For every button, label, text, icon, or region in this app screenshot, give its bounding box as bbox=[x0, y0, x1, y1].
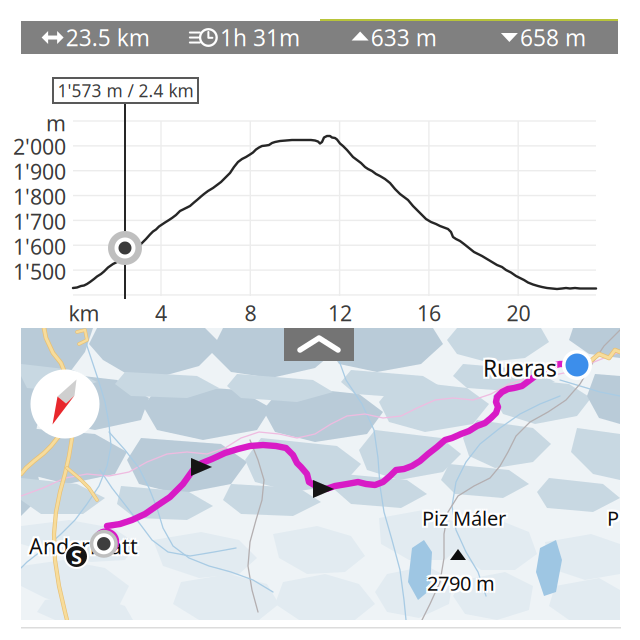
staticText: Andermatt bbox=[31, 530, 140, 558]
staticText: 1'800 bbox=[13, 182, 66, 211]
staticText: Andermatt bbox=[31, 534, 140, 562]
staticText: 2790 m bbox=[425, 568, 493, 594]
staticText: P bbox=[607, 503, 619, 529]
staticText: Piz Máler bbox=[420, 505, 504, 531]
staticText: 16 bbox=[417, 299, 441, 327]
staticText: Piz Máler bbox=[422, 505, 506, 531]
staticText: 2'000 bbox=[13, 132, 66, 161]
staticText: 2790 m bbox=[429, 568, 497, 594]
staticText: Piz Máler bbox=[424, 507, 508, 533]
staticText: Andermatt bbox=[27, 530, 136, 558]
staticText: 2790 m bbox=[429, 572, 497, 598]
staticText: Andermatt bbox=[29, 534, 138, 562]
button[interactable]: 658 m bbox=[469, 21, 618, 54]
staticText: Rueras bbox=[485, 355, 559, 385]
staticText: Andermatt bbox=[29, 532, 138, 560]
staticText: 2790 m bbox=[425, 572, 493, 598]
staticText: P bbox=[605, 503, 617, 529]
staticText: Piz Máler bbox=[420, 503, 504, 529]
staticText: 1'900 bbox=[13, 157, 66, 186]
staticText: S bbox=[71, 543, 82, 570]
button[interactable]: 1h 31m bbox=[170, 21, 319, 54]
button[interactable]: Compass bbox=[30, 369, 99, 438]
staticText: P bbox=[605, 507, 617, 533]
staticText: Rueras bbox=[481, 351, 555, 381]
staticText: Andermatt bbox=[27, 534, 136, 562]
staticText: Piz Máler bbox=[422, 507, 506, 533]
staticText: 2790 m bbox=[427, 570, 495, 596]
staticText: Andermatt bbox=[29, 530, 138, 558]
staticText: 2790 m bbox=[427, 572, 495, 598]
staticText: 20 bbox=[506, 299, 530, 327]
button[interactable]: Collapse map bbox=[284, 328, 354, 361]
staticText: m bbox=[46, 109, 66, 137]
staticText: Rueras bbox=[483, 353, 557, 383]
staticText: P bbox=[609, 507, 621, 533]
staticText: 633 m bbox=[371, 22, 437, 52]
staticText: Piz Máler bbox=[422, 503, 506, 529]
staticText: 658 m bbox=[520, 22, 586, 52]
staticText: 23.5 km bbox=[66, 22, 150, 52]
staticText: Rueras bbox=[485, 353, 559, 383]
staticText: Piz Máler bbox=[424, 505, 508, 531]
button[interactable]: 23.5 km bbox=[21, 21, 170, 54]
staticText: Rueras bbox=[481, 353, 555, 383]
staticText: Andermatt bbox=[31, 532, 140, 560]
staticText: 12 bbox=[328, 299, 352, 327]
staticText: 4 bbox=[155, 299, 167, 327]
staticText: Rueras bbox=[481, 355, 555, 385]
staticText: 2790 m bbox=[427, 568, 495, 594]
staticText: 1h 31m bbox=[220, 22, 300, 52]
staticText: Rueras bbox=[483, 351, 557, 381]
staticText: P bbox=[605, 505, 617, 531]
staticText: 1'500 bbox=[13, 257, 66, 286]
staticText: 2790 m bbox=[429, 570, 497, 596]
staticText: 8 bbox=[244, 299, 256, 327]
staticText: P bbox=[609, 505, 621, 531]
staticText: Rueras bbox=[485, 351, 559, 381]
staticText: 1'573 m / 2.4 km bbox=[57, 79, 193, 102]
staticText: Piz Máler bbox=[420, 507, 504, 533]
staticText: Rueras bbox=[483, 355, 557, 385]
staticText: 1'700 bbox=[13, 207, 66, 236]
staticText: km bbox=[68, 299, 99, 327]
staticText: P bbox=[607, 505, 619, 531]
staticText: 2790 m bbox=[425, 570, 493, 596]
staticText: P bbox=[607, 507, 619, 533]
staticText: Piz Máler bbox=[424, 503, 508, 529]
button[interactable]: 633 m bbox=[319, 21, 469, 54]
staticText: Andermatt bbox=[27, 532, 136, 560]
staticText: P bbox=[609, 503, 621, 529]
staticText: 1'600 bbox=[13, 232, 66, 261]
